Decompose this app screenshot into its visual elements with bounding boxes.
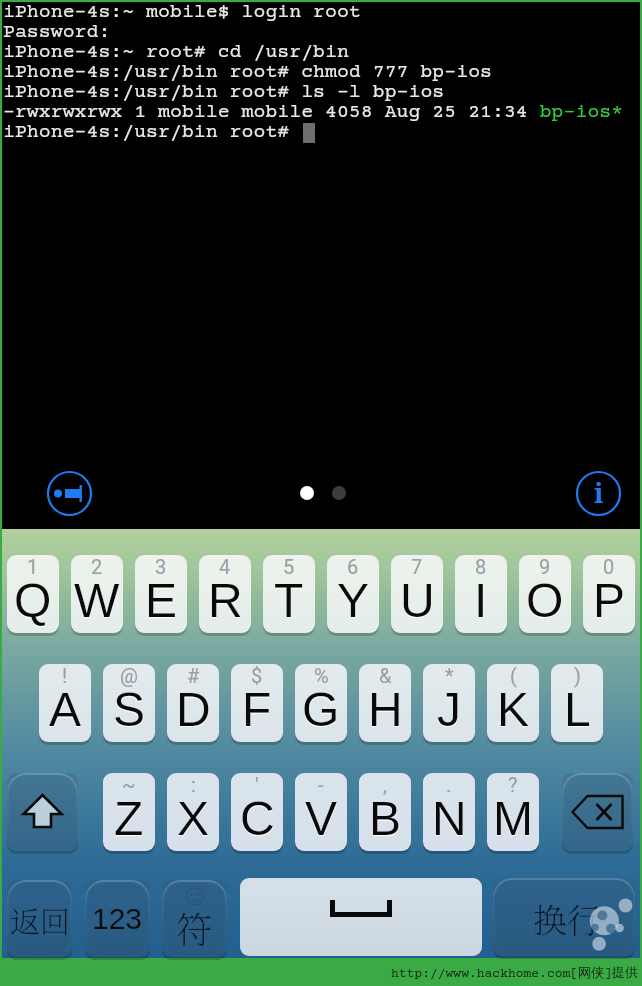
button[interactable]: ' [231, 773, 283, 851]
staticText: W [74, 575, 120, 629]
staticText: , [383, 773, 387, 796]
staticText: H [368, 683, 403, 737]
staticText: F [242, 683, 272, 737]
staticText: E [145, 575, 178, 629]
staticText: D [176, 683, 211, 737]
button[interactable]: Return [7, 880, 72, 957]
staticText: 2 [91, 555, 103, 578]
staticText: Z [114, 792, 144, 846]
staticText: 6 [347, 555, 359, 578]
staticText: I [474, 574, 488, 628]
button[interactable]: - [295, 773, 347, 851]
staticText: ? [508, 773, 518, 796]
staticText: R [208, 575, 243, 629]
button[interactable]: . [423, 773, 475, 851]
staticText: C [240, 792, 275, 846]
staticText: S [113, 683, 146, 737]
staticText: B [369, 792, 402, 846]
button[interactable]: Enter [493, 878, 635, 956]
button[interactable]: Space [240, 878, 482, 956]
button[interactable]: ! [39, 664, 91, 742]
staticText: K [497, 683, 530, 737]
button[interactable]: ( [487, 664, 539, 742]
button[interactable]: $ [231, 664, 283, 742]
staticText: W [74, 574, 120, 628]
button[interactable]: Info [576, 471, 621, 516]
staticText: H [368, 684, 403, 738]
staticText: T [274, 575, 304, 629]
staticText: ' [255, 773, 259, 796]
staticText: N [432, 793, 467, 847]
staticText: X [177, 793, 210, 847]
button[interactable]: 8 [455, 555, 507, 633]
button[interactable]: & [359, 664, 411, 742]
staticText: A [49, 684, 82, 738]
button[interactable]: Symbols [162, 880, 227, 957]
staticText: S [113, 684, 146, 738]
staticText: # [187, 664, 200, 687]
staticText: T [274, 574, 304, 628]
button[interactable]: # [167, 664, 219, 742]
staticText: 7 [411, 555, 423, 578]
staticText: Q [14, 574, 52, 628]
staticText: : [191, 773, 196, 796]
button[interactable]: 2 [71, 555, 123, 633]
button[interactable]: 3 [135, 555, 187, 633]
button[interactable]: Shift [7, 773, 78, 851]
staticText: Y [337, 574, 370, 628]
staticText: F [242, 684, 272, 738]
button[interactable]: 1 [7, 555, 59, 633]
staticText: - [318, 773, 324, 796]
button[interactable]: % [295, 664, 347, 742]
button[interactable]: 5 [263, 555, 315, 633]
staticText: J [437, 684, 461, 738]
staticText: 3 [155, 555, 167, 578]
staticText: E [145, 574, 178, 628]
button[interactable]: 6 [327, 555, 379, 633]
staticText: ~ [122, 773, 136, 796]
button[interactable]: 7 [391, 555, 443, 633]
staticText: D [176, 684, 211, 738]
staticText: 符 [176, 902, 213, 954]
staticText: A [49, 683, 82, 737]
staticText: ) [574, 664, 581, 687]
button[interactable]: 0 [583, 555, 635, 633]
button[interactable]: Backspace [562, 773, 633, 851]
staticText: http://www.hackhome.com[网侠]提供 [391, 964, 638, 981]
staticText: B [369, 793, 402, 847]
staticText: iPhone-4s:/usr/bin root# chmod 777 bp-io… [3, 61, 492, 81]
staticText: 换行 [533, 894, 601, 943]
button[interactable]: 4 [199, 555, 251, 633]
button[interactable]: ) [551, 664, 603, 742]
staticText: i [594, 474, 604, 511]
staticText: 1 [27, 555, 39, 578]
button[interactable]: ? [487, 773, 539, 851]
button[interactable]: 9 [519, 555, 571, 633]
staticText: L [564, 684, 591, 738]
staticText: Password: [3, 21, 111, 41]
button[interactable]: ~ [103, 773, 155, 851]
staticText: Y [337, 575, 370, 629]
button[interactable]: , [359, 773, 411, 851]
staticText: U [400, 575, 435, 629]
staticText: ! [62, 664, 68, 687]
staticText: L [564, 683, 591, 737]
button[interactable]: Toggle keyboard [47, 471, 92, 516]
staticText: % [314, 664, 329, 687]
button[interactable]: 123 [85, 880, 150, 957]
button[interactable]: : [167, 773, 219, 851]
staticText: 4 [219, 555, 231, 578]
staticText: R [208, 574, 243, 628]
staticText: 8 [475, 555, 487, 578]
staticText: Q [14, 575, 52, 629]
button[interactable]: * [423, 664, 475, 742]
staticText: M [493, 792, 533, 846]
staticText: K [497, 684, 530, 738]
staticText: G [302, 683, 340, 737]
staticText: 5 [283, 555, 295, 578]
staticText: iPhone-4s:/usr/bin root# [3, 121, 302, 141]
button[interactable]: @ [103, 664, 155, 742]
staticText: ( [510, 664, 517, 687]
staticText: -rwxrwxrwx 1 mobile mobile 4058 Aug 25 2… [3, 101, 624, 121]
staticText: 返回 [10, 898, 70, 941]
